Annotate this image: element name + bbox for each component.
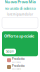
staticText: Prodotto [12, 64, 25, 68]
staticText: descrizione [12, 68, 21, 70]
staticText: no usata di adesso [4, 5, 35, 11]
staticText: Scopri [6, 50, 14, 53]
staticText: Offerta speciale [4, 33, 34, 39]
staticText: lorem ipsum dolor [7, 13, 33, 16]
staticText: descrizione [12, 61, 21, 63]
staticText: Nuova Prova Mia [4, 0, 35, 4]
staticText: Prodotto [12, 57, 25, 61]
